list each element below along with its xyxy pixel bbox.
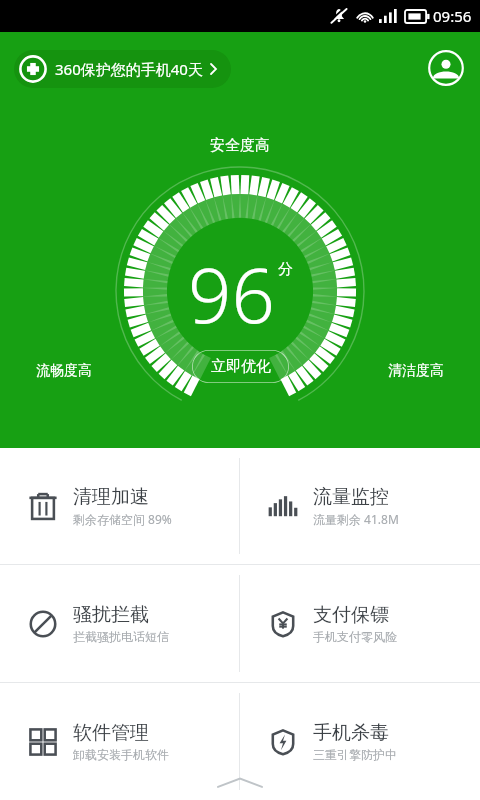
button[interactable]: 360保护您的手机40天	[14, 50, 231, 88]
staticText: 96	[188, 242, 275, 346]
staticText: 流量剩余 41.8M	[313, 511, 399, 527]
staticText: 三重引擎防护中	[313, 747, 397, 762]
staticText: 流量监控	[313, 485, 389, 509]
staticText: 09:56	[433, 6, 472, 26]
staticText: 安全度高	[210, 136, 270, 155]
staticText: 支付保镖	[313, 603, 389, 627]
button[interactable]: 软件管理	[0, 683, 239, 800]
staticText: 分	[278, 260, 293, 279]
staticText: 手机支付零风险	[313, 629, 397, 644]
button[interactable]: 支付保镖	[240, 565, 480, 682]
staticText: 手机杀毒	[313, 721, 389, 745]
staticText: 剩余存储空间 89%	[73, 511, 172, 527]
staticText: 立即优化	[211, 357, 271, 376]
button[interactable]: 清理加速	[0, 448, 239, 564]
button[interactable]: 骚扰拦截	[0, 565, 239, 682]
staticText: 清洁度高	[388, 362, 444, 380]
staticText: 拦截骚扰电话短信	[73, 629, 169, 644]
staticText: 软件管理	[73, 721, 149, 745]
staticText: 流畅度高	[36, 362, 92, 380]
button[interactable]: 流量监控	[240, 448, 480, 564]
button[interactable]: Expand	[0, 766, 480, 800]
staticText: 360保护您的手机40天	[55, 59, 203, 79]
staticText: 卸载安装手机软件	[73, 747, 169, 762]
staticText: 清理加速	[73, 485, 149, 509]
staticText: 骚扰拦截	[73, 603, 149, 627]
button[interactable]: Account	[428, 50, 464, 86]
button[interactable]: 立即优化	[192, 350, 289, 383]
button[interactable]: 手机杀毒	[240, 683, 480, 800]
